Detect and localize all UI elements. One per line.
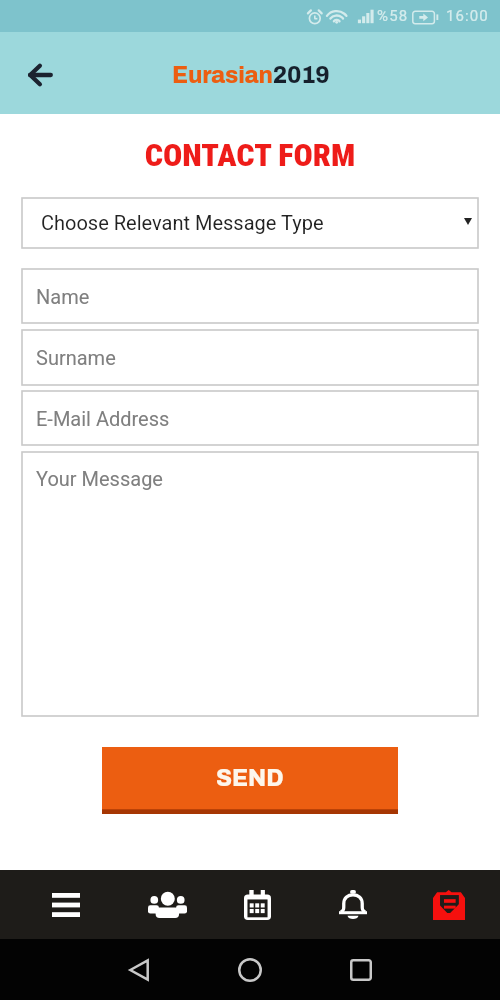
button[interactable]: Recents (336, 939, 386, 1000)
staticText: 16:00 (446, 7, 489, 25)
button[interactable]: Name (22, 269, 478, 323)
button[interactable]: Back (16, 51, 64, 99)
staticText: SEND (216, 766, 284, 791)
button[interactable]: Contacts (141, 870, 193, 939)
button[interactable]: Notifications (327, 870, 379, 939)
staticText: Name (36, 285, 90, 308)
button[interactable]: Calendar (231, 870, 283, 939)
staticText: Choose Relevant Message Type (41, 211, 324, 234)
staticText: Surname (36, 346, 116, 369)
button[interactable]: Surname (22, 330, 478, 385)
button[interactable]: Home (225, 939, 275, 1000)
button[interactable]: Back (114, 939, 164, 1000)
button[interactable]: Your Message (22, 452, 478, 716)
button[interactable]: Menu (40, 870, 92, 939)
staticText: %58 (377, 7, 409, 25)
button[interactable]: Messages (423, 870, 475, 939)
button[interactable]: Choose Relevant Message Type (22, 198, 478, 248)
button[interactable]: SEND (102, 747, 398, 814)
staticText: Your Message (36, 467, 163, 490)
button[interactable]: E-Mail Address (22, 391, 478, 445)
staticText: E-Mail Address (36, 407, 170, 430)
staticText: CONTACT FORM (0, 136, 500, 174)
staticText: Eurasian2019 (172, 63, 330, 88)
